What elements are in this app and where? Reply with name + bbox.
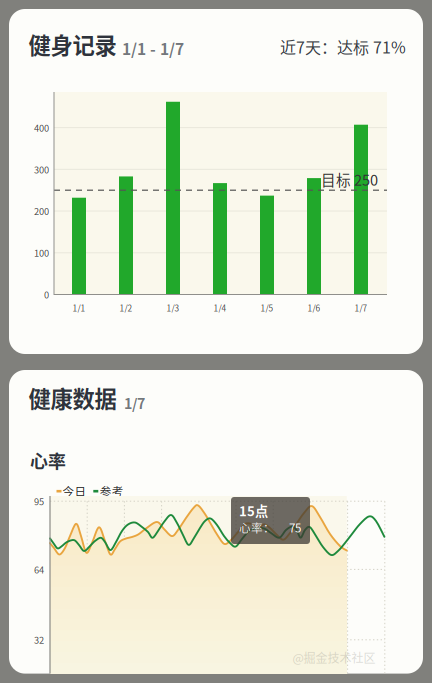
staticText: 100 (34, 246, 49, 259)
staticText: 今日 (63, 483, 87, 499)
staticText: 75 (289, 519, 301, 536)
staticText: 64 (34, 563, 44, 576)
staticText: 400 (34, 121, 49, 134)
staticText: 心率： (239, 519, 275, 536)
staticText: 15点 (239, 501, 268, 520)
button[interactable]: 健身记录 (9, 9, 423, 354)
staticText: 1/4 (213, 302, 226, 314)
staticText: 1/7 (354, 302, 367, 314)
staticText: 1/7 (124, 392, 145, 413)
staticText: 95 (34, 494, 44, 508)
staticText: 300 (34, 163, 49, 176)
staticText: 目标 250 (321, 169, 378, 190)
staticText: 健身记录 (29, 28, 117, 60)
staticText: 1/5 (260, 302, 273, 314)
staticText: 参考 (100, 483, 124, 499)
staticText: @掘金技术社区 (292, 649, 375, 666)
staticText: 1/2 (119, 302, 132, 314)
staticText: 32 (34, 633, 44, 647)
staticText: 近7天：达标 71% (280, 35, 406, 58)
staticText: 1/3 (166, 302, 179, 314)
staticText: 1/1 - 1/7 (122, 37, 184, 59)
staticText: 心率 (30, 448, 66, 473)
staticText: 1/1 (72, 302, 85, 314)
staticText: 1/6 (307, 302, 320, 314)
staticText: 200 (34, 204, 49, 218)
button[interactable]: 健康数据 (9, 370, 423, 674)
staticText: 0 (44, 288, 49, 301)
staticText: 健康数据 (29, 382, 117, 414)
